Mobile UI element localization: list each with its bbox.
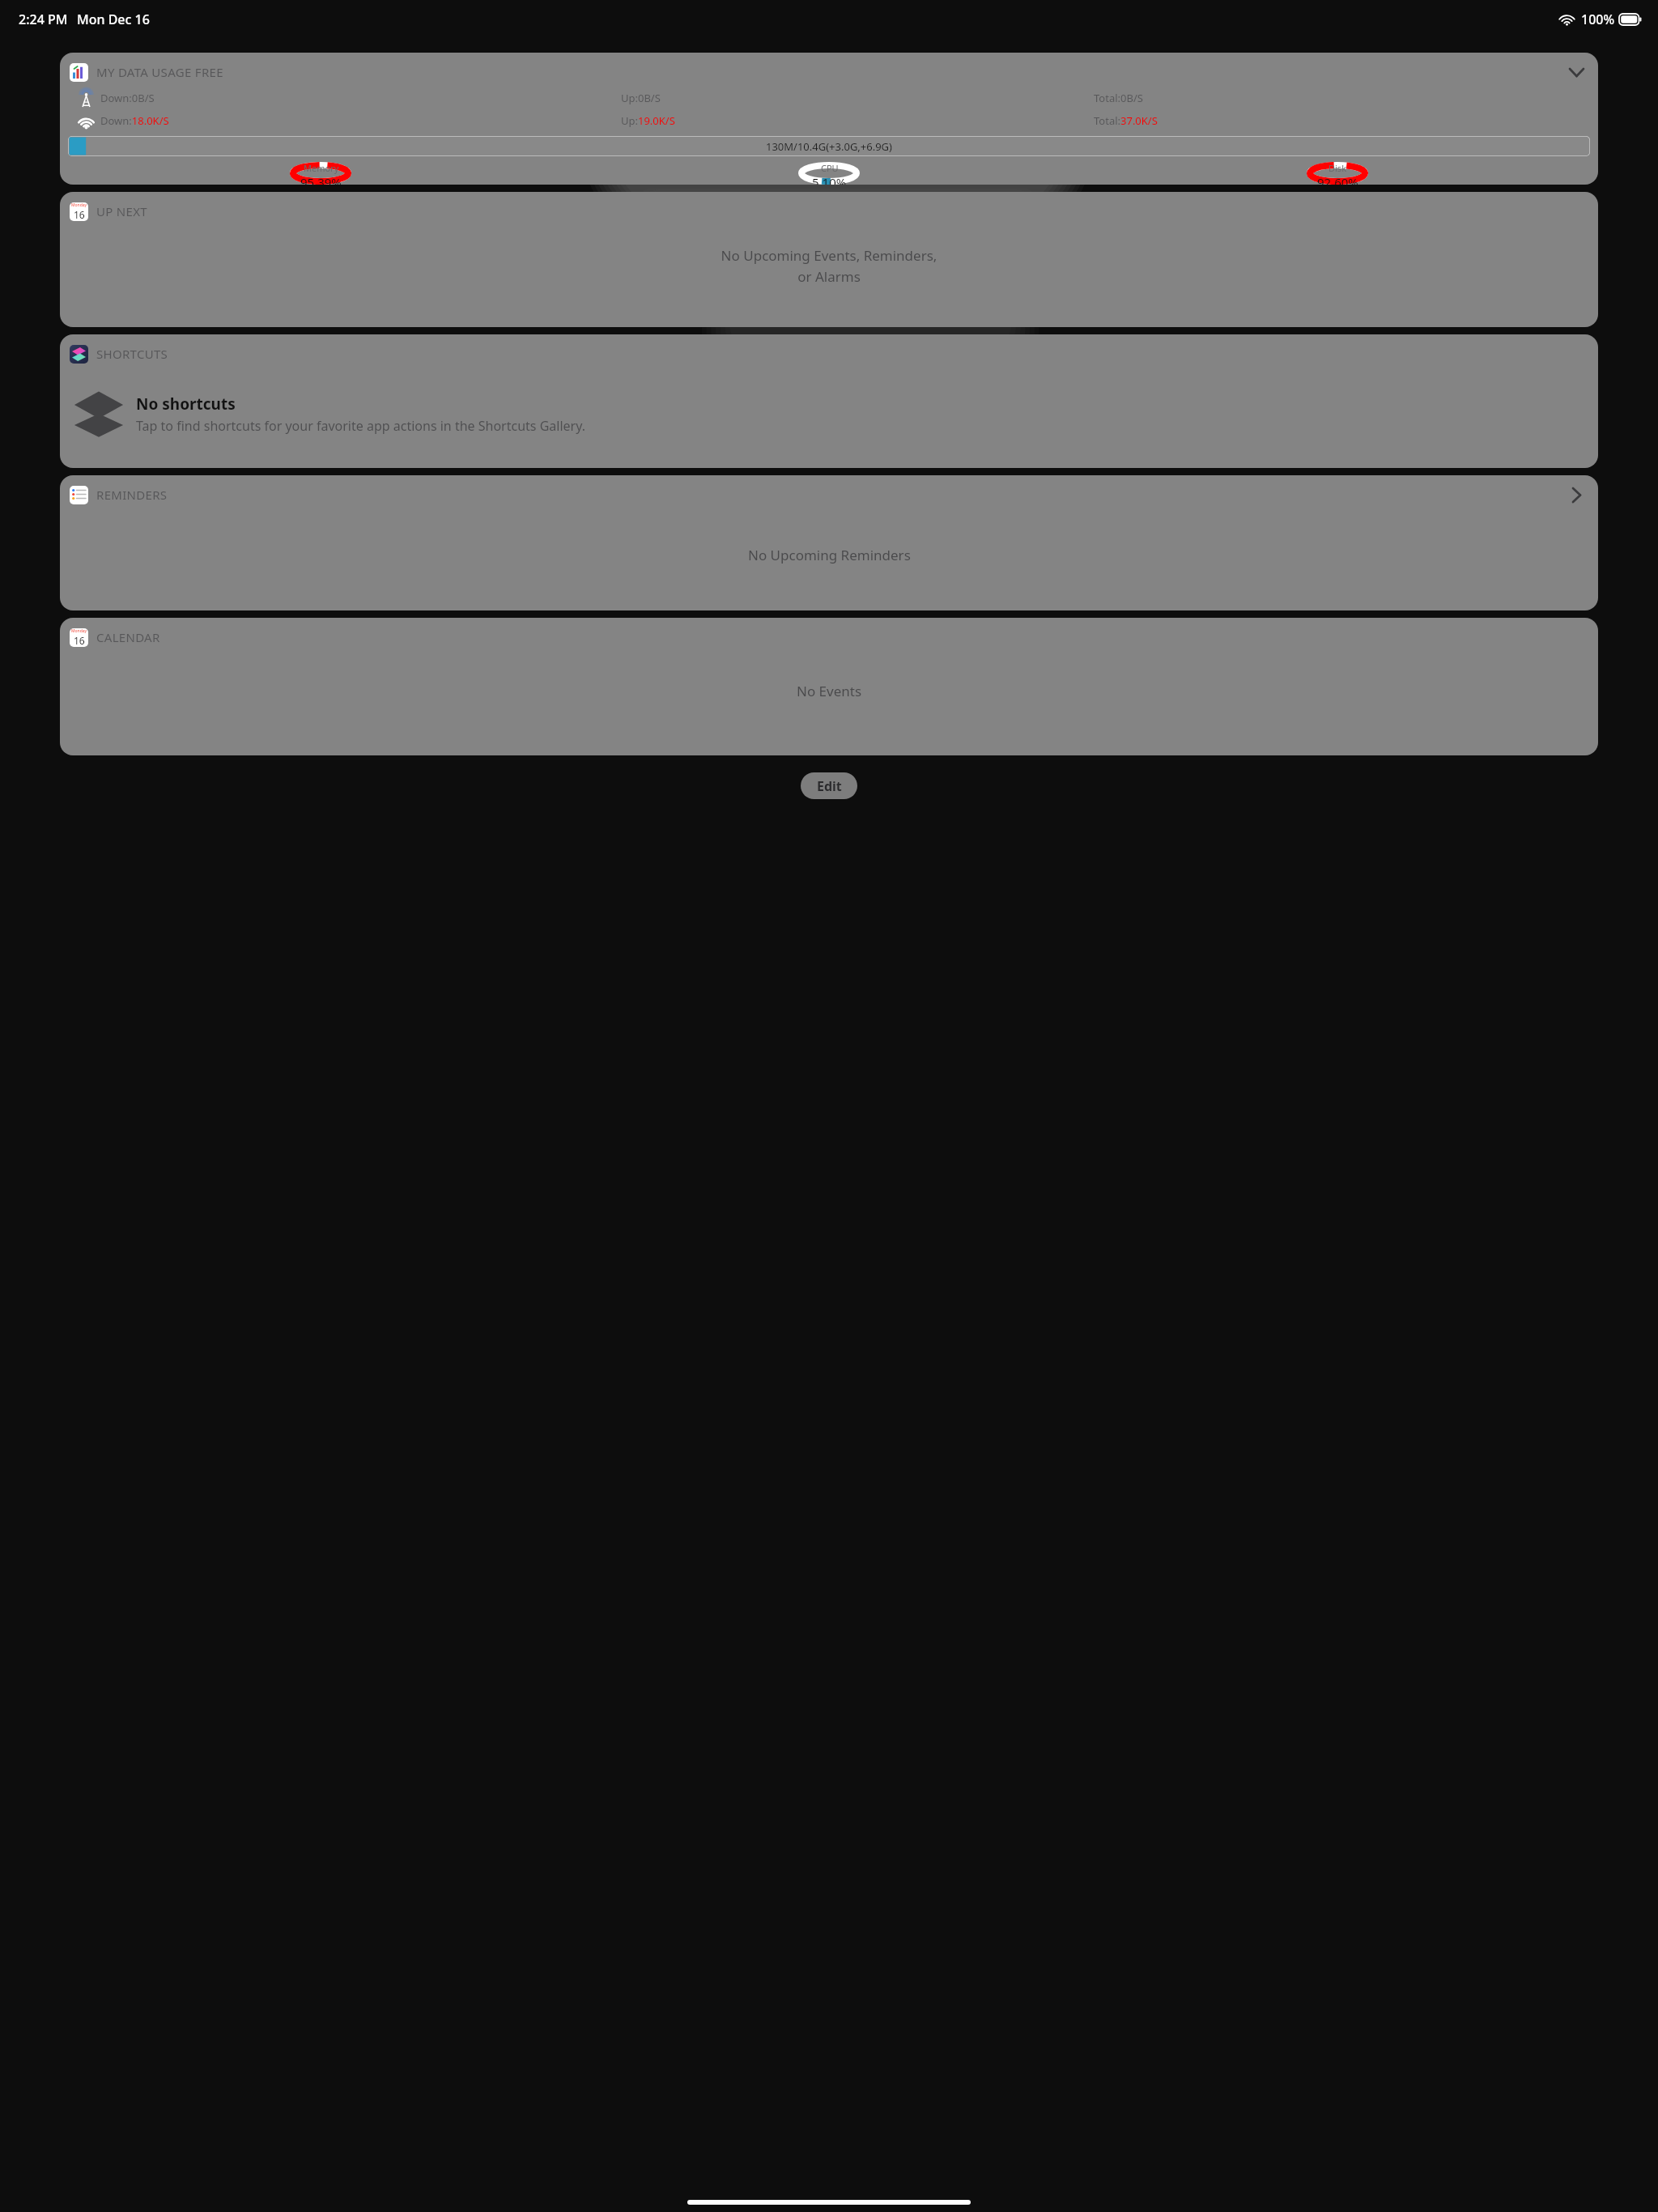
staticText: Total:37.0K/S bbox=[1094, 113, 1158, 128]
staticText: Disk bbox=[1329, 162, 1347, 174]
staticText: CPU bbox=[821, 162, 839, 174]
staticText: 16 bbox=[74, 208, 85, 221]
staticText: REMINDERS bbox=[96, 487, 168, 503]
staticText: No shortcuts bbox=[136, 393, 236, 415]
staticText: 92.60% bbox=[1317, 174, 1358, 185]
staticText: 100% bbox=[1581, 11, 1615, 28]
button[interactable]: Monday bbox=[60, 192, 1598, 327]
button[interactable]: Edit bbox=[801, 772, 857, 799]
button[interactable]: 130M/10.4G(+3.0G,+6.9G) bbox=[68, 136, 1590, 156]
staticText: 130M/10.4G(+3.0G,+6.9G) bbox=[766, 139, 892, 154]
staticText: Edit bbox=[817, 777, 842, 795]
staticText: Up:19.0K/S bbox=[621, 113, 675, 128]
staticText: Up:0B/S bbox=[621, 91, 661, 105]
staticText: No Upcoming Events, Reminders, or Alarms bbox=[60, 246, 1598, 286]
staticText: Monday bbox=[71, 628, 87, 634]
staticText: No Events bbox=[797, 682, 862, 700]
staticText: Down:18.0K/S bbox=[100, 113, 169, 128]
button[interactable]: MY DATA USAGE FREE bbox=[60, 53, 1598, 185]
staticText: UP NEXT bbox=[96, 203, 147, 219]
staticText: Mon Dec 16 bbox=[77, 11, 150, 28]
staticText: Memory bbox=[304, 162, 339, 174]
staticText: 5.10% bbox=[812, 174, 847, 185]
staticText: Down:0B/S bbox=[100, 91, 155, 105]
staticText: 95.39% bbox=[300, 174, 342, 185]
staticText: MY DATA USAGE FREE bbox=[96, 64, 223, 80]
staticText: Tap to find shortcuts for your favorite … bbox=[136, 417, 585, 435]
staticText: 16 bbox=[74, 634, 85, 647]
staticText: CALENDAR bbox=[96, 629, 160, 645]
staticText: No Upcoming Reminders bbox=[748, 546, 911, 564]
button[interactable]: Monday bbox=[60, 618, 1598, 755]
button[interactable]: REMINDERS bbox=[60, 475, 1598, 610]
staticText: SHORTCUTS bbox=[96, 346, 168, 362]
staticText: Total:0B/S bbox=[1094, 91, 1143, 105]
staticText: Monday bbox=[71, 202, 87, 208]
button[interactable]: Collapse widget bbox=[1565, 61, 1588, 83]
button[interactable]: SHORTCUTS bbox=[60, 334, 1598, 468]
button[interactable]: Open Reminders bbox=[1565, 483, 1588, 506]
staticText: 2:24 PM bbox=[19, 11, 68, 28]
